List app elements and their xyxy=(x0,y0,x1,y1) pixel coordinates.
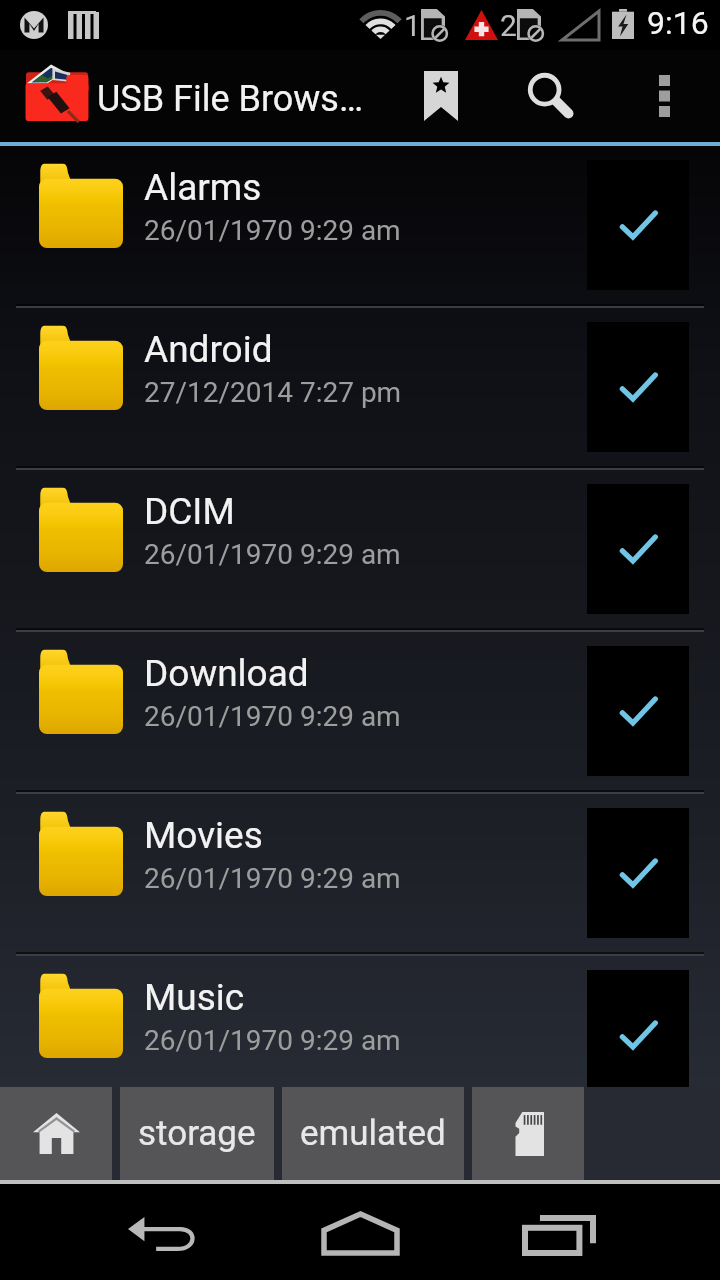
button[interactable]: SD card xyxy=(472,1087,584,1180)
button[interactable]: Download xyxy=(0,632,720,794)
staticText: 26/01/1970 9:29 am xyxy=(144,700,401,733)
staticText: 9:16 xyxy=(647,4,709,42)
button[interactable]: Select Music xyxy=(587,970,689,1100)
button[interactable]: Select Android xyxy=(587,322,689,452)
button[interactable]: More options xyxy=(622,50,706,141)
staticText: 1 xyxy=(404,8,421,43)
button[interactable]: Bookmarks xyxy=(396,50,486,141)
staticText: Alarms xyxy=(144,166,262,209)
staticText: Download xyxy=(144,652,309,695)
button[interactable]: Movies xyxy=(0,794,720,956)
button[interactable]: storage xyxy=(120,1087,274,1180)
staticText: 26/01/1970 9:29 am xyxy=(144,214,401,247)
button[interactable]: Select Download xyxy=(587,646,689,776)
staticText: DCIM xyxy=(144,490,235,533)
button[interactable]: Music xyxy=(0,956,720,1118)
staticText: 26/01/1970 9:29 am xyxy=(144,862,401,895)
button[interactable]: emulated xyxy=(282,1087,464,1180)
button[interactable]: Select DCIM xyxy=(587,484,689,614)
button[interactable]: DCIM xyxy=(0,470,720,632)
button[interactable]: Select Movies xyxy=(587,808,689,938)
button[interactable]: Android xyxy=(0,308,720,470)
staticText: Music xyxy=(144,976,245,1019)
staticText: 27/12/2014 7:27 pm xyxy=(144,376,402,409)
button[interactable]: Home folder xyxy=(0,1087,112,1180)
staticText: emulated xyxy=(300,1113,446,1154)
button[interactable]: Home xyxy=(260,1184,460,1280)
staticText: storage xyxy=(138,1113,256,1154)
staticText: Movies xyxy=(144,814,263,857)
staticText: 2 xyxy=(500,8,517,43)
staticText: Android xyxy=(144,328,273,371)
button[interactable]: Alarms xyxy=(0,146,720,308)
button[interactable]: Back xyxy=(60,1184,260,1280)
staticText: 26/01/1970 9:29 am xyxy=(144,1024,401,1057)
button[interactable]: Recent apps xyxy=(460,1184,660,1280)
button[interactable]: Select Alarms xyxy=(587,160,689,290)
staticText: 26/01/1970 9:29 am xyxy=(144,538,401,571)
staticText: USB File Brows… xyxy=(97,78,364,120)
button[interactable]: Search xyxy=(504,50,596,141)
